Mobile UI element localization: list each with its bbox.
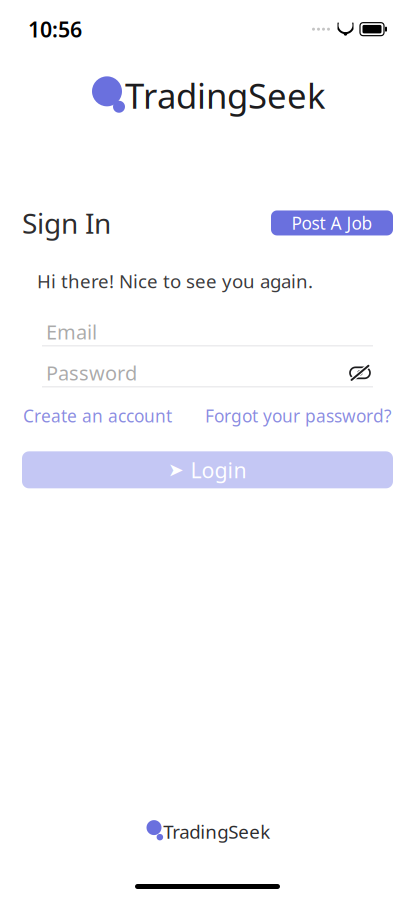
staticText: 10:56 xyxy=(28,15,82,43)
staticText: Hi there! Nice to see you again. xyxy=(37,268,313,293)
staticText: Post A Job xyxy=(291,211,372,234)
staticText: Sign In xyxy=(22,204,111,242)
button[interactable]: ➤ xyxy=(22,451,393,488)
button[interactable]: Create an account xyxy=(23,404,172,427)
button[interactable]: Post A Job xyxy=(271,210,393,235)
staticText: Create an account xyxy=(23,404,172,427)
staticText: Forgot your password? xyxy=(205,404,392,427)
button[interactable]: Forgot your password? xyxy=(205,404,392,427)
staticText: Password xyxy=(46,360,137,386)
staticText: Email xyxy=(46,319,97,345)
staticText: ➤ xyxy=(168,459,184,480)
staticText: TradingSeek xyxy=(163,819,270,844)
staticText: Login xyxy=(190,456,246,484)
button[interactable]: Show password xyxy=(347,362,373,384)
staticText: TradingSeek xyxy=(125,72,326,118)
